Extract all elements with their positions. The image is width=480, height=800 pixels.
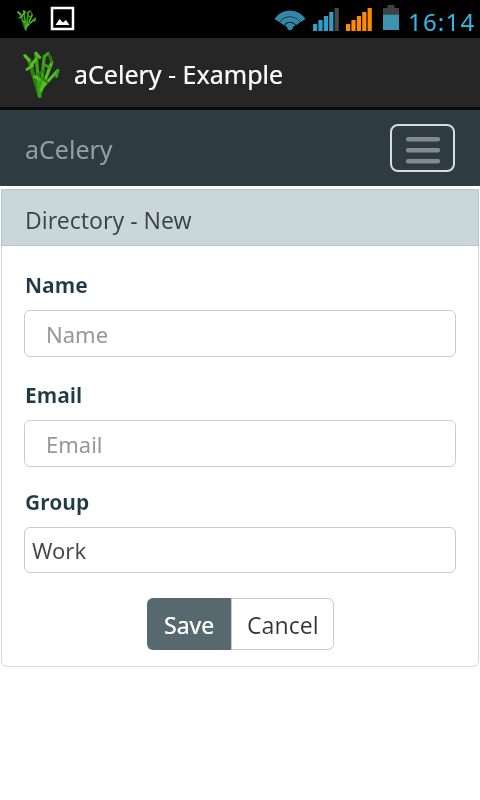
staticText: Cancel (247, 609, 319, 640)
button[interactable] (390, 124, 455, 172)
staticText: Name (25, 271, 88, 300)
staticText: Email (25, 381, 83, 410)
button[interactable]: Email (24, 420, 456, 467)
staticText: Email (46, 429, 103, 459)
button[interactable]: Save (147, 598, 231, 650)
button[interactable]: Work (24, 527, 456, 573)
button[interactable]: Name (24, 310, 456, 357)
staticText: aCelery - Example (74, 57, 284, 91)
staticText: aCelery (25, 132, 113, 166)
button[interactable]: Cancel (231, 598, 334, 650)
staticText: Group (25, 488, 90, 517)
staticText: Save (164, 609, 215, 640)
staticText: Directory - New (25, 204, 192, 235)
staticText: Work (32, 535, 87, 565)
staticText: 16:14 (408, 5, 476, 38)
staticText: Name (46, 319, 109, 349)
